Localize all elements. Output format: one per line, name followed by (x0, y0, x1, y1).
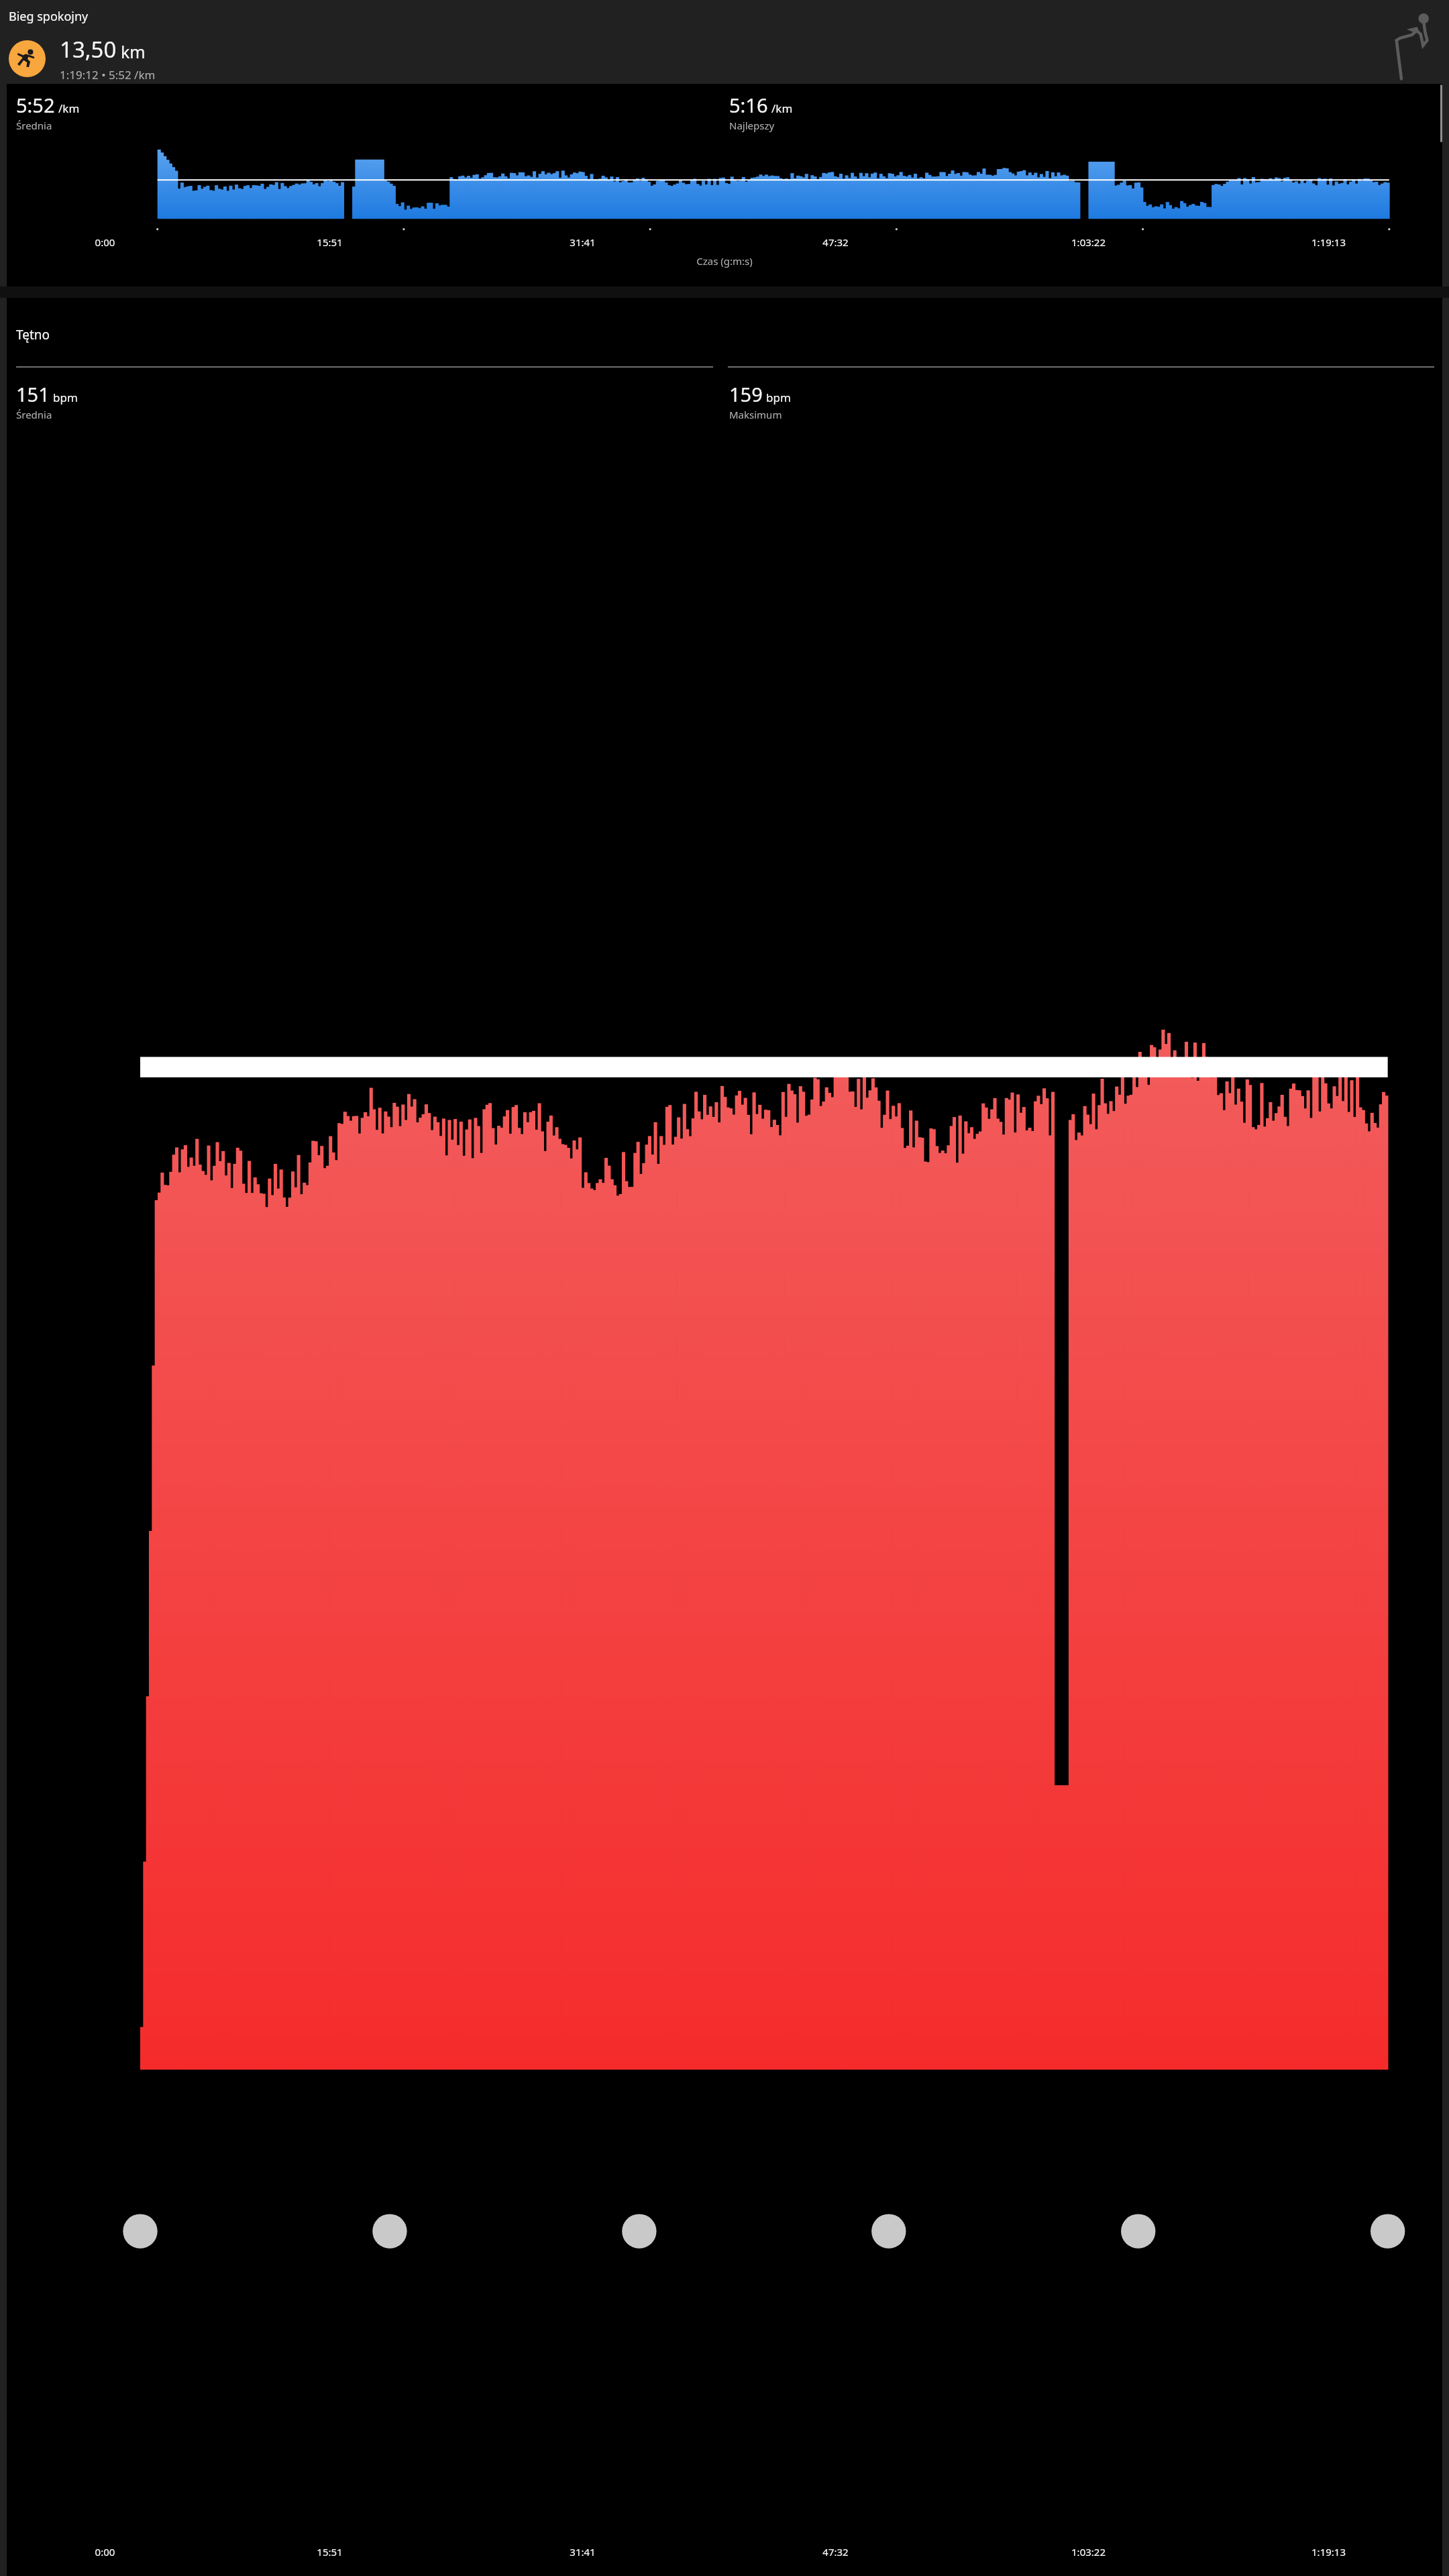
staticText: 15:51 (203, 235, 456, 249)
staticText: 47:32 (709, 235, 962, 249)
staticText: 5:52 (16, 92, 55, 118)
staticText: Bieg spokojny (9, 8, 89, 25)
staticText: 47:32 (709, 2545, 962, 2559)
staticText: 13,50 (60, 34, 117, 64)
staticText: Średnia (16, 408, 52, 421)
staticText: Średnia (16, 119, 52, 132)
staticText: Czas (g:m:s) (7, 254, 1442, 268)
staticText: 0:00 (7, 2545, 203, 2559)
staticText: bpm (53, 390, 78, 405)
staticText: Tętno (16, 326, 50, 343)
staticText: Najlepszy (729, 119, 775, 132)
staticText: 1:03:22 (962, 235, 1215, 249)
button[interactable]: 5:52 (7, 84, 1442, 286)
staticText: 15:51 (203, 2545, 456, 2559)
staticText: 1:19:13 (1215, 235, 1442, 249)
staticText: /km (58, 101, 80, 116)
staticText: 31:41 (456, 235, 709, 249)
staticText: 5:16 (729, 92, 768, 118)
staticText: km (121, 40, 146, 63)
staticText: 1:03:22 (962, 2545, 1215, 2559)
button[interactable]: Route map (0, 0, 1449, 84)
staticText: 159 (729, 381, 763, 407)
staticText: 1:19:12 • 5:52 /km (60, 67, 156, 83)
button[interactable]: Tętno (7, 298, 1442, 2576)
staticText: /km (771, 101, 793, 116)
staticText: bpm (766, 390, 791, 405)
staticText: 31:41 (456, 2545, 709, 2559)
other: Route map (1379, 11, 1438, 80)
staticText: Maksimum (729, 408, 782, 421)
staticText: 0:00 (7, 235, 203, 249)
staticText: 1:19:13 (1215, 2545, 1442, 2559)
staticText: 151 (16, 381, 50, 407)
